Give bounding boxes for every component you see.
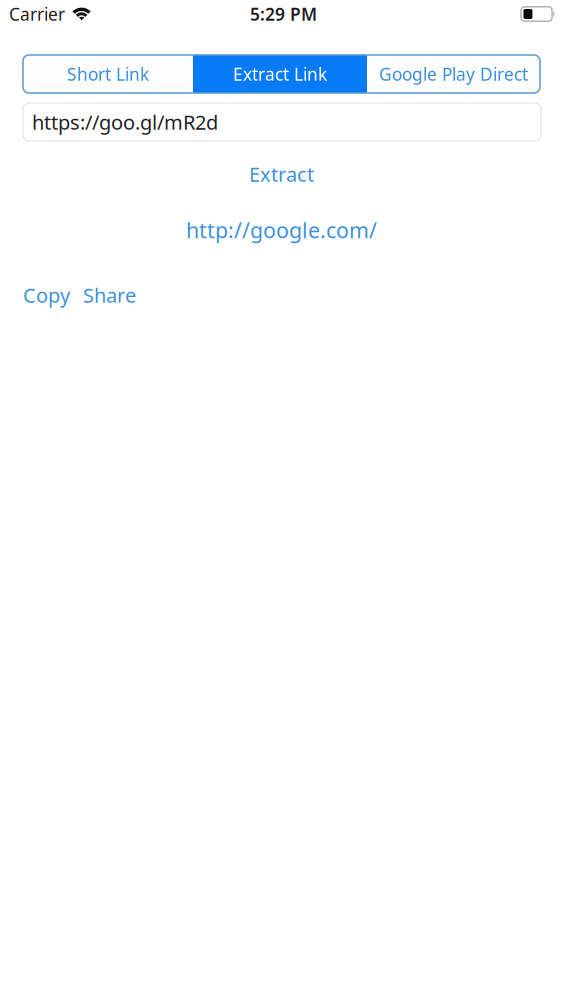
- staticText: Carrier: [9, 2, 65, 25]
- button[interactable]: http://google.com/: [186, 219, 377, 241]
- staticText: Copy: [23, 282, 70, 308]
- button[interactable]: Copy: [23, 282, 70, 308]
- staticText: Share: [83, 282, 136, 308]
- staticText: Extract: [249, 161, 314, 187]
- button[interactable]: Google Play Direct: [367, 55, 540, 93]
- staticText: 5:29 PM: [250, 2, 317, 25]
- button[interactable]: Extract Link: [193, 55, 367, 93]
- button[interactable]: https://goo.gl/mR2d: [23, 103, 541, 141]
- button[interactable]: Share: [83, 282, 136, 308]
- staticText: Extract Link: [233, 62, 327, 85]
- staticText: Short Link: [67, 62, 149, 85]
- button[interactable]: Extract: [249, 163, 314, 185]
- staticText: https://goo.gl/mR2d: [32, 109, 218, 135]
- staticText: http://google.com/: [186, 216, 377, 244]
- staticText: Google Play Direct: [379, 62, 528, 85]
- button[interactable]: Short Link: [23, 55, 193, 93]
